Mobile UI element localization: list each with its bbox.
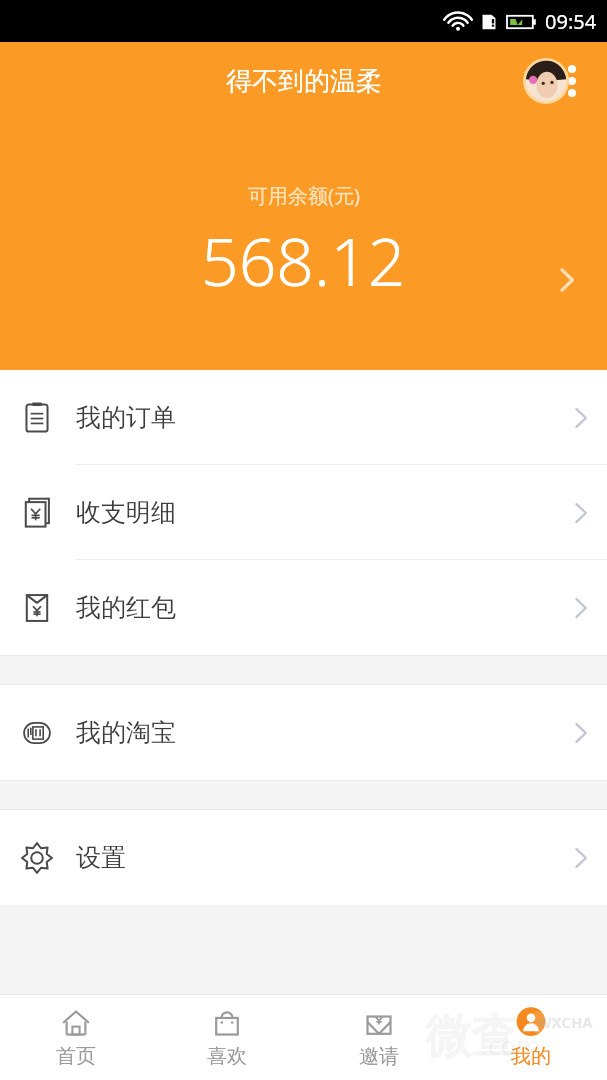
staticText: 得不到的温柔: [226, 65, 382, 98]
button[interactable]: Profile avatar: [523, 58, 569, 104]
staticText: 邀请: [359, 1044, 399, 1069]
button[interactable]: More options: [545, 54, 599, 108]
button[interactable]: Balance details: [537, 250, 597, 310]
button[interactable]: 邀请: [303, 994, 455, 1080]
button[interactable]: 我的订单: [0, 370, 607, 465]
button[interactable]: 收支明细: [0, 465, 607, 560]
staticText: 首页: [56, 1044, 96, 1069]
button[interactable]: 首页: [0, 994, 151, 1080]
staticText: 微查: [425, 1008, 517, 1066]
button[interactable]: 我的: [455, 994, 607, 1080]
staticText: 收支明细: [76, 497, 176, 528]
button[interactable]: 我的淘宝: [0, 685, 607, 780]
staticText: 我的红包: [76, 592, 176, 623]
button[interactable]: 设置: [0, 810, 607, 905]
staticText: 可用余额(元): [248, 182, 360, 209]
staticText: WXCHA: [537, 1012, 593, 1032]
staticText: 喜欢: [207, 1044, 247, 1069]
staticText: 我的订单: [76, 402, 176, 433]
staticText: 我的: [511, 1044, 551, 1069]
staticText: 设置: [76, 842, 126, 873]
staticText: .com: [481, 1027, 541, 1062]
staticText: 568.12: [201, 215, 406, 305]
staticText: 我的淘宝: [76, 717, 176, 748]
button[interactable]: 喜欢: [151, 994, 303, 1080]
staticText: 09:54: [545, 8, 597, 35]
button[interactable]: 我的红包: [0, 560, 607, 655]
